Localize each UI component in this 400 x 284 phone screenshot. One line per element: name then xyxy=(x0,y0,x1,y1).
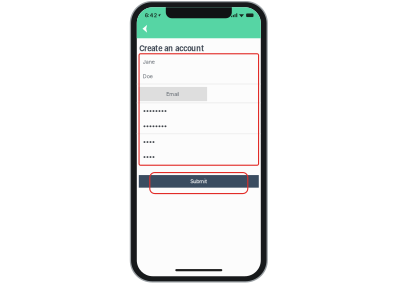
button[interactable]: Doe xyxy=(137,69,261,84)
staticText: 6:42 xyxy=(145,12,157,18)
button[interactable]: Jane xyxy=(137,55,261,69)
staticText: •••• xyxy=(143,153,155,160)
staticText: Email xyxy=(166,91,179,97)
button[interactable]: Email xyxy=(137,84,261,103)
staticText: •••••••• xyxy=(143,107,167,114)
staticText: Doe xyxy=(143,73,153,80)
button[interactable]: Submit xyxy=(139,175,259,188)
staticText: •••••••• xyxy=(143,122,167,129)
staticText: •••• xyxy=(143,138,155,145)
staticText: Submit xyxy=(190,178,207,184)
button[interactable]: •••••••• xyxy=(137,118,261,133)
staticText: Jane xyxy=(143,59,155,65)
button[interactable]: •••••••• xyxy=(137,103,261,118)
button[interactable]: Back xyxy=(137,23,150,34)
staticText: Create an account xyxy=(139,44,204,53)
button[interactable]: •••• xyxy=(137,134,261,149)
button[interactable]: •••• xyxy=(137,149,261,164)
